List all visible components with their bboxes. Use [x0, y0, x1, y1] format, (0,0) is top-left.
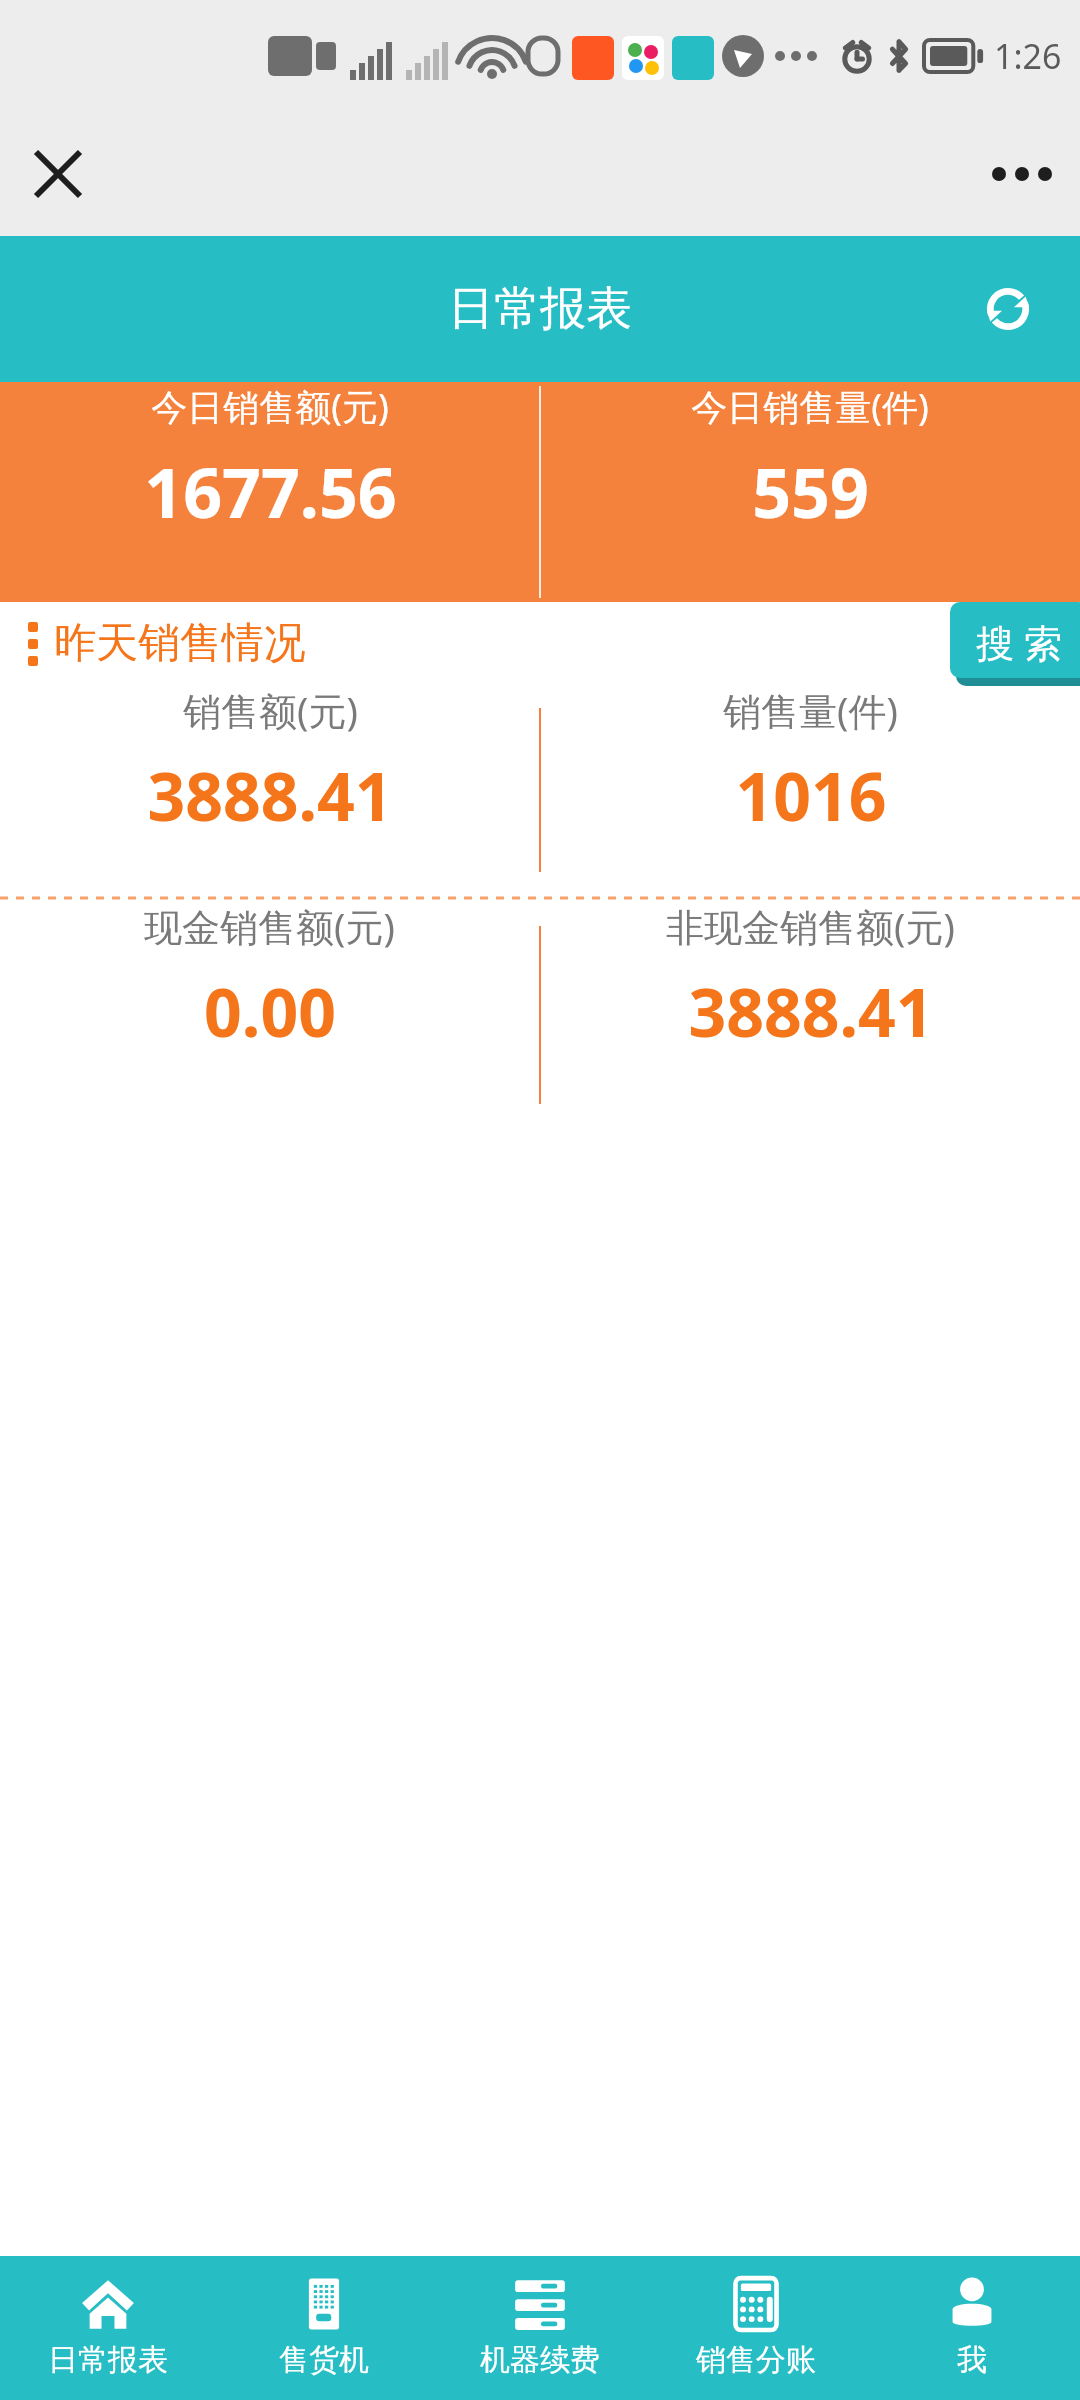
staticText: 非现金销售额(元) [666, 900, 955, 952]
staticText: 1:26 [994, 33, 1062, 79]
staticText: 3888.41 [147, 750, 393, 840]
staticText: 机器续费 [480, 2341, 600, 2379]
staticText: 昨天销售情况 [54, 617, 306, 670]
staticText: 日常报表 [48, 2341, 168, 2379]
staticText: 日常报表 [448, 280, 632, 338]
staticText: 销售额(元) [183, 684, 358, 736]
button[interactable]: 售货机 [216, 2256, 432, 2400]
staticText: 销售分账 [696, 2341, 816, 2379]
staticText: 今日销售量(件) [691, 382, 929, 431]
staticText: 1677.56 [144, 445, 397, 538]
staticText: 现金销售额(元) [144, 900, 395, 952]
button[interactable]: 昨天销售情况 [28, 617, 306, 670]
staticText: 559 [752, 445, 869, 538]
button[interactable]: More options [984, 136, 1060, 212]
staticText: 3888.41 [688, 966, 934, 1056]
button[interactable]: Close [20, 136, 96, 212]
button[interactable]: 我 [864, 2256, 1080, 2400]
staticText: 我 [957, 2341, 987, 2379]
staticText: 销售量(件) [723, 684, 898, 736]
button[interactable]: Refresh [966, 267, 1050, 351]
staticText: 售货机 [279, 2341, 369, 2379]
staticText: 1016 [735, 750, 887, 840]
staticText: 今日销售额(元) [151, 382, 389, 431]
button[interactable]: 搜 索 [950, 602, 1080, 678]
button[interactable]: 机器续费 [432, 2256, 648, 2400]
button[interactable]: 日常报表 [0, 2256, 216, 2400]
staticText: 0.00 [204, 966, 336, 1056]
button[interactable]: 销售分账 [648, 2256, 864, 2400]
staticText: 搜 索 [976, 616, 1062, 664]
